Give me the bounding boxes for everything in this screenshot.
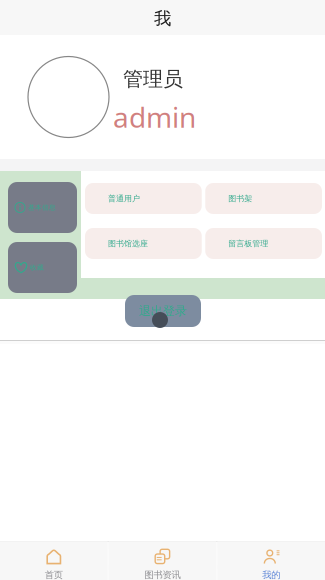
staticText: 我: [154, 8, 171, 29]
staticText: 首页: [45, 569, 63, 580]
staticText: 基本信息: [28, 203, 56, 212]
button[interactable]: 首页: [0, 542, 108, 580]
button[interactable]: 普通用户: [85, 183, 202, 214]
staticText: 图书馆选座: [108, 239, 148, 248]
button[interactable]: 收藏: [8, 242, 77, 293]
staticText: 我的: [262, 569, 280, 580]
button[interactable]: 我的: [217, 542, 325, 580]
button[interactable]: 图书馆选座: [85, 228, 202, 259]
staticText: admin: [113, 98, 196, 136]
staticText: 普通用户: [108, 194, 140, 203]
staticText: 留言板管理: [228, 239, 268, 248]
button[interactable]: 退出登录: [125, 295, 201, 327]
staticText: 收藏: [30, 263, 44, 272]
button[interactable]: 基本信息: [8, 182, 77, 233]
staticText: 管理员: [123, 67, 183, 91]
staticText: 图书架: [228, 194, 252, 203]
button[interactable]: 留言板管理: [205, 228, 322, 259]
staticText: 退出登录: [139, 304, 187, 318]
button[interactable]: 图书资讯: [109, 542, 216, 580]
staticText: 图书资讯: [144, 569, 180, 580]
button[interactable]: 图书架: [205, 183, 322, 214]
